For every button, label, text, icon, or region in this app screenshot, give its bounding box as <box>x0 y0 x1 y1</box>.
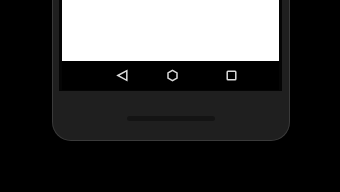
button[interactable]: Recent apps <box>209 61 253 90</box>
button[interactable]: Back <box>100 61 144 90</box>
button[interactable]: Home <box>150 61 194 90</box>
